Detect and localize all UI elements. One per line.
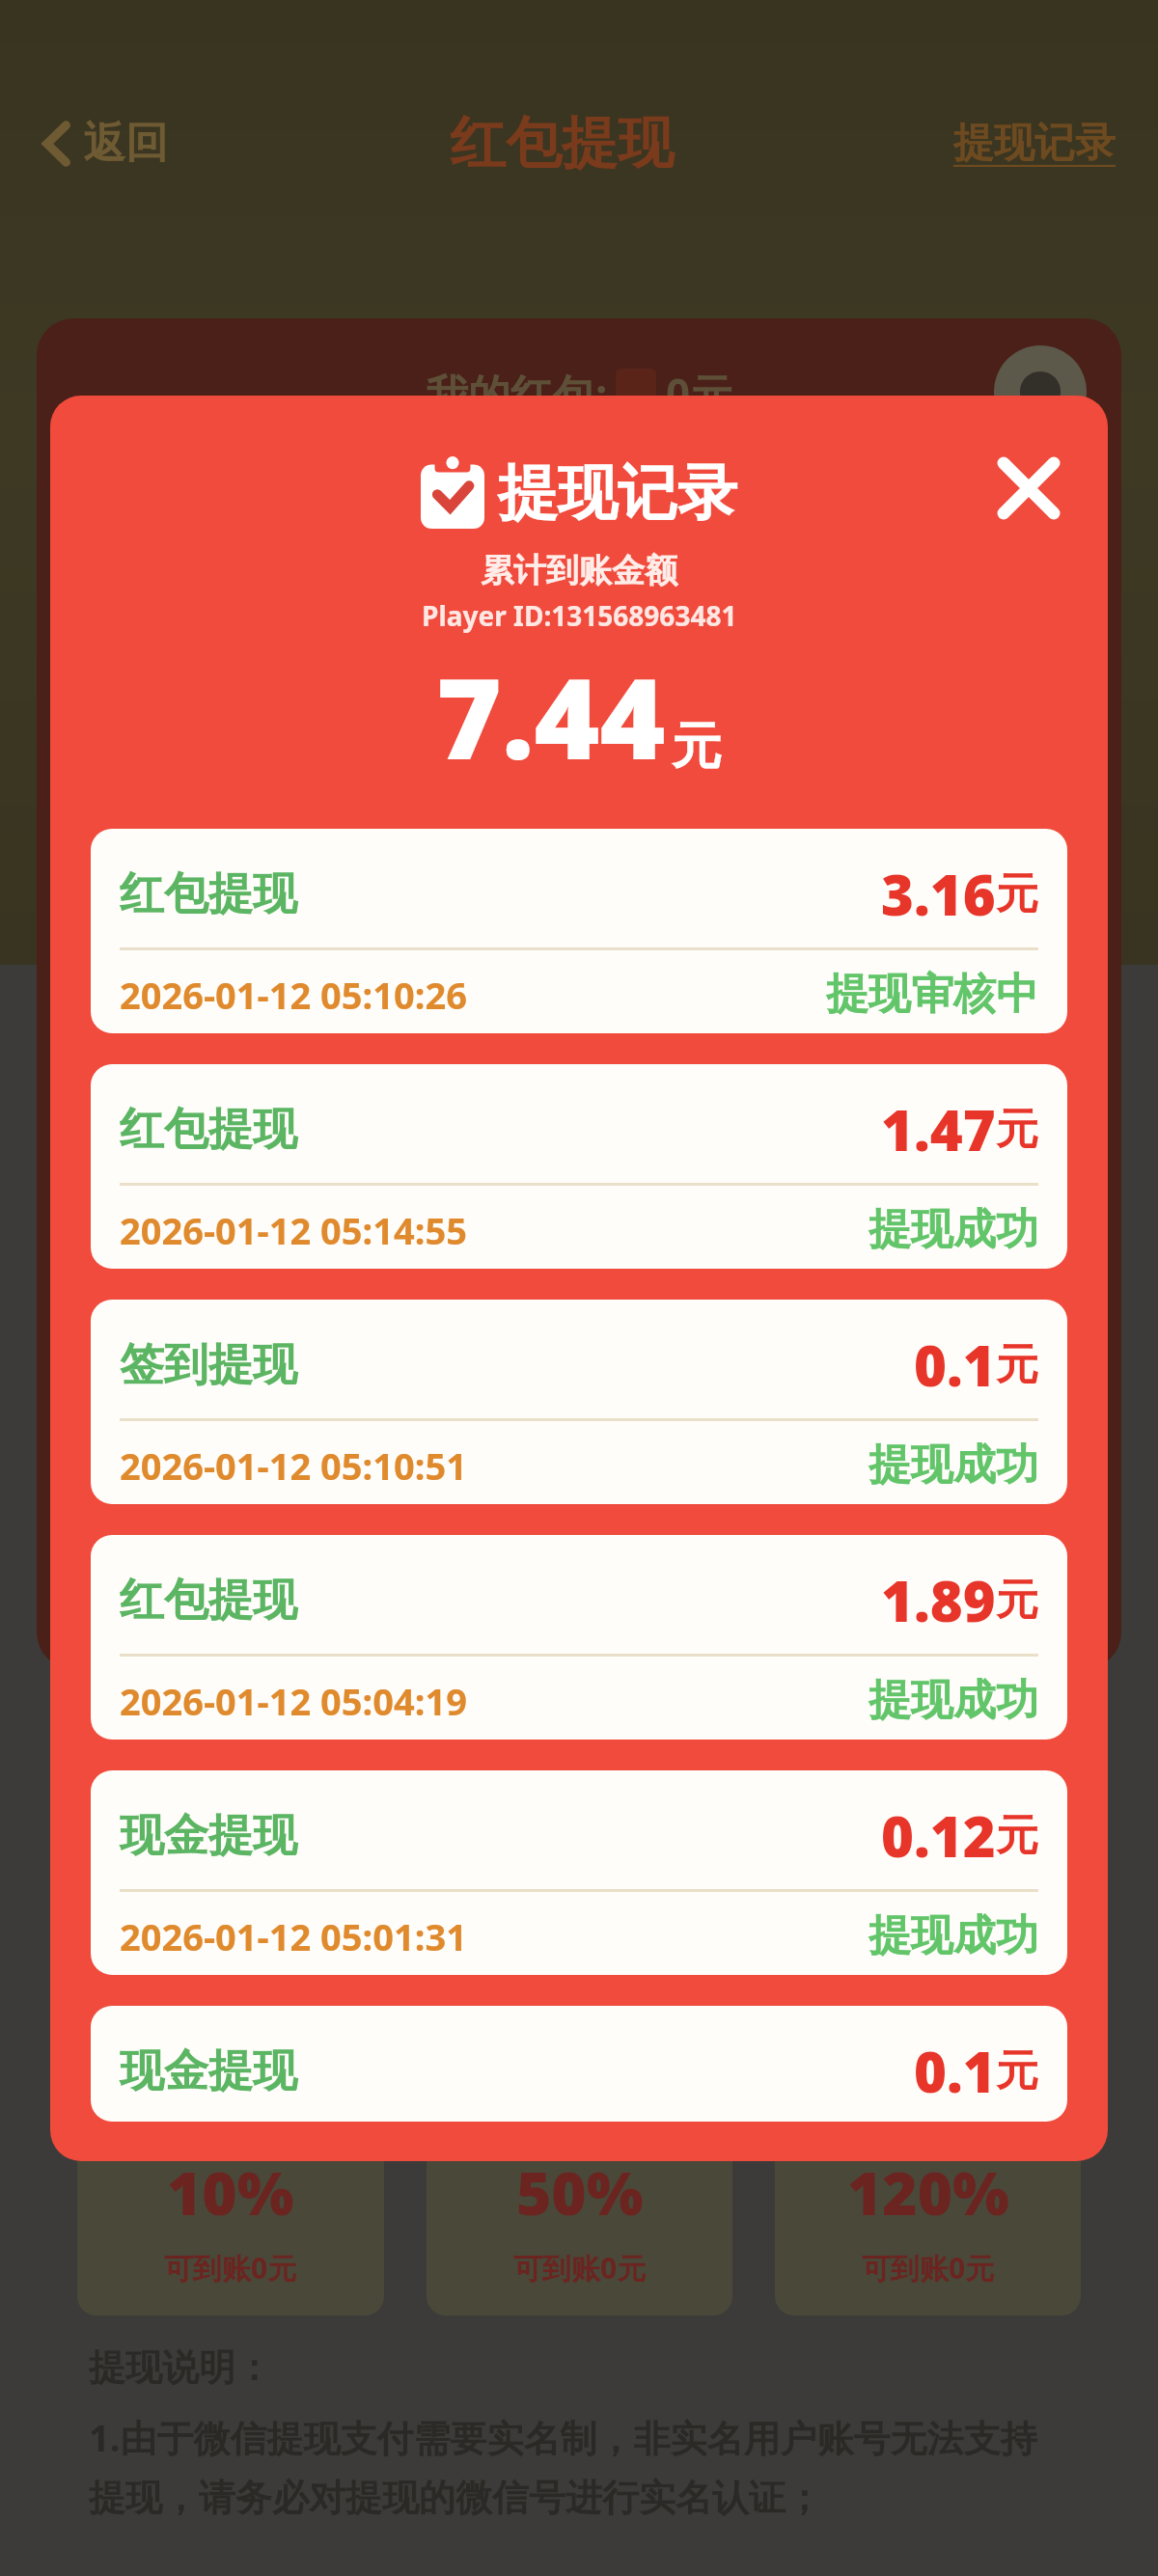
button[interactable]: 50% [427, 2123, 732, 2316]
staticText: 0.1 [914, 2033, 996, 2109]
staticText: 提现记录 [953, 118, 1116, 169]
staticText: 可到账0元 [513, 2248, 647, 2288]
staticText: 50% [516, 2151, 644, 2233]
staticText: 1.89 [881, 1562, 996, 1638]
button[interactable]: 现金提现 [91, 1770, 1067, 1975]
staticText: 元 [672, 715, 722, 779]
staticText: 元 [996, 1103, 1038, 1156]
button[interactable]: 红包提现 [91, 829, 1067, 1033]
staticText: 2026-01-12 05:10:26 [120, 970, 467, 1020]
button[interactable]: 返回 [35, 111, 174, 176]
button[interactable]: 红包提现 [91, 1064, 1067, 1269]
button[interactable]: Settings [994, 345, 1087, 438]
button[interactable]: 10% [77, 2123, 384, 2316]
staticText: 1.由于微信提现支付需要实名制，非实名用户账号无法支持提现，请务必对提现的微信号… [89, 2412, 1069, 2522]
staticText: 我的红包: [426, 365, 608, 423]
button[interactable]: 提现记录 [950, 114, 1119, 173]
staticText: 0元 [666, 365, 733, 423]
staticText: 7.44 [436, 640, 666, 792]
button[interactable]: 120% [775, 2123, 1081, 2316]
staticText: 提现审核中 [826, 968, 1038, 1021]
staticText: 现金提现 [120, 1808, 297, 1864]
staticText: 提现成功 [868, 1674, 1038, 1727]
staticText: 返回 [83, 117, 168, 170]
staticText: 10% [167, 2151, 294, 2233]
staticText: 可到账0元 [862, 2248, 995, 2288]
staticText: 提现记录 [498, 455, 737, 531]
staticText: 2026-01-12 05:04:19 [120, 1676, 467, 1726]
staticText: 累计到账金额 [481, 550, 677, 591]
staticText: 120% [847, 2151, 1009, 2233]
button[interactable]: 红包提现 [91, 1535, 1067, 1740]
staticText: 0.12 [881, 1797, 996, 1874]
staticText: 红包提现 [120, 866, 297, 922]
button[interactable]: Close [982, 442, 1075, 534]
staticText: 1.47 [881, 1091, 996, 1167]
staticText: 红包提现 [120, 1573, 297, 1629]
staticText: 元 [996, 1338, 1038, 1391]
staticText: 0.1 [914, 1327, 996, 1403]
staticText: 提现成功 [868, 1909, 1038, 1962]
staticText: 提现说明： [89, 2344, 272, 2391]
button[interactable]: 现金提现 [91, 2006, 1067, 2122]
staticText: 提现成功 [868, 1203, 1038, 1256]
staticText: 元 [996, 2044, 1038, 2097]
staticText: 红包提现 [450, 108, 674, 178]
staticText: 提现成功 [868, 1439, 1038, 1492]
staticText: 元 [996, 1809, 1038, 1862]
staticText: 可到账0元 [164, 2248, 297, 2288]
staticText: 红包提现 [120, 1102, 297, 1158]
staticText: Player ID:131568963481 [422, 597, 737, 634]
staticText: 元 [996, 867, 1038, 920]
staticText: 元 [996, 1574, 1038, 1627]
staticText: 2026-01-12 05:14:55 [120, 1205, 467, 1255]
staticText: 现金提现 [120, 2043, 297, 2099]
staticText: 签到提现 [120, 1337, 297, 1393]
staticText: 2026-01-12 05:01:31 [120, 1911, 467, 1961]
staticText: 2026-01-12 05:10:51 [120, 1440, 467, 1491]
button[interactable]: 签到提现 [91, 1300, 1067, 1504]
staticText: 3.16 [881, 856, 996, 932]
